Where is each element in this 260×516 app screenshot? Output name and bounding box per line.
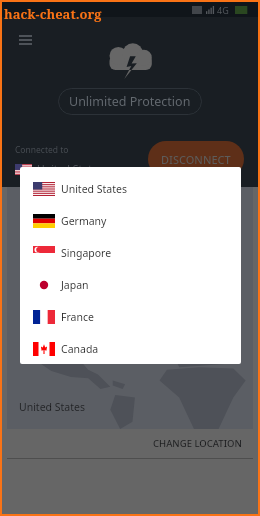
staticText: Singapore	[61, 246, 112, 260]
button[interactable]: DISCONNECT	[148, 141, 244, 177]
button[interactable]: France	[20, 301, 241, 333]
staticText: Unlimited Protection	[69, 93, 191, 110]
staticText: Canada	[61, 342, 99, 356]
button[interactable]: Open navigation menu	[12, 27, 38, 53]
staticText: United States	[61, 182, 127, 196]
staticText: France	[61, 310, 94, 324]
staticText: Germany	[61, 214, 107, 228]
staticText: Connected to	[15, 144, 69, 156]
staticText: United States	[37, 162, 103, 176]
button[interactable]: Singapore	[20, 237, 241, 269]
staticText: hack-cheat.org	[4, 5, 102, 23]
staticText: United States	[19, 400, 85, 414]
staticText: 4G	[217, 4, 229, 16]
staticText: Japan	[61, 278, 89, 292]
staticText: CHANGE LOCATION	[153, 437, 242, 450]
staticText: DISCONNECT	[161, 152, 231, 167]
button[interactable]: CHANGE LOCATION	[142, 432, 252, 454]
button[interactable]: Unlimited Protection	[58, 88, 202, 115]
button[interactable]: Canada	[20, 333, 241, 364]
button[interactable]: Japan	[20, 269, 241, 301]
button[interactable]: United States	[20, 173, 241, 205]
button[interactable]: Germany	[20, 205, 241, 237]
